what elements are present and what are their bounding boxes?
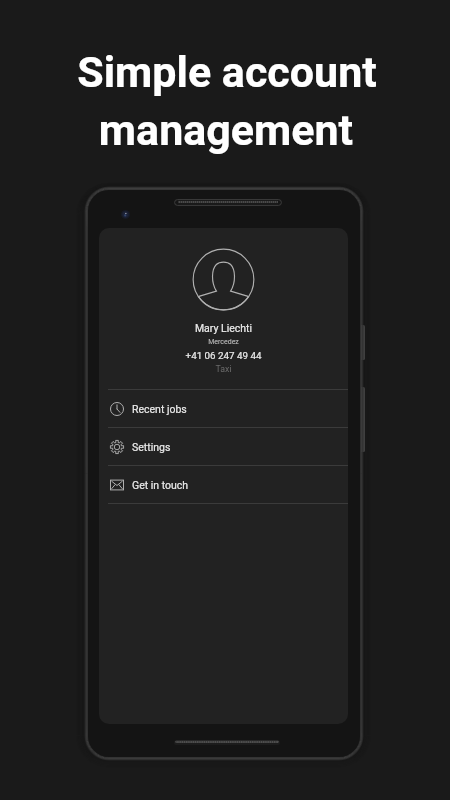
staticText: Recent jobs	[132, 403, 187, 415]
staticText: +41 06 247 49 44	[99, 350, 348, 361]
staticText: management	[1, 105, 450, 155]
staticText: Mercedez	[99, 338, 348, 346]
staticText: Taxi	[99, 364, 348, 374]
button[interactable]: Get in touch	[99, 466, 348, 503]
staticText: Mary Liechti	[99, 322, 348, 334]
button[interactable]: Recent jobs	[99, 390, 348, 427]
staticText: Settings	[132, 441, 171, 453]
staticText: Simple account	[2, 47, 450, 97]
button[interactable]: Settings	[99, 428, 348, 465]
button[interactable]: Profile photo	[192, 248, 255, 311]
staticText: Get in touch	[132, 479, 189, 491]
